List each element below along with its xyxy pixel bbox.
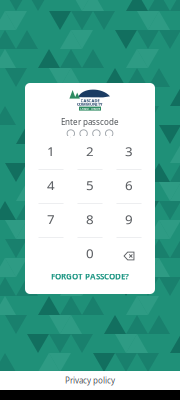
staticText: 1: [47, 142, 55, 160]
staticText: FORGOT PASSCODE?: [51, 271, 129, 282]
button[interactable]: 3: [109, 136, 148, 170]
staticText: 4: [47, 176, 55, 194]
staticText: 0: [86, 244, 94, 262]
staticText: 2: [86, 142, 94, 160]
staticText: 6: [125, 176, 133, 194]
staticText: Enter passcode: [61, 117, 119, 127]
button[interactable]: [109, 238, 148, 272]
button[interactable]: FORGOT PASSCODE?: [25, 268, 155, 284]
staticText: 9: [125, 210, 133, 228]
staticText: COMMUNITY: [77, 101, 103, 107]
button[interactable]: 1: [31, 136, 70, 170]
staticText: 5: [86, 176, 94, 194]
button[interactable]: 9: [109, 204, 148, 238]
staticText: 8: [86, 210, 94, 228]
button[interactable]: 8: [70, 204, 109, 238]
staticText: CASCADE: [80, 98, 99, 103]
button[interactable]: 0: [70, 238, 109, 272]
button[interactable]: 2: [70, 136, 109, 170]
staticText: Privacy policy: [65, 375, 115, 386]
button[interactable]: Privacy policy: [0, 371, 180, 390]
button[interactable]: 4: [31, 170, 70, 204]
button[interactable]: 5: [70, 170, 109, 204]
staticText: CREDIT UNION: [80, 107, 100, 110]
button[interactable]: 6: [109, 170, 148, 204]
button[interactable]: 7: [31, 204, 70, 238]
staticText: 3: [125, 142, 133, 160]
staticText: 7: [47, 210, 55, 228]
